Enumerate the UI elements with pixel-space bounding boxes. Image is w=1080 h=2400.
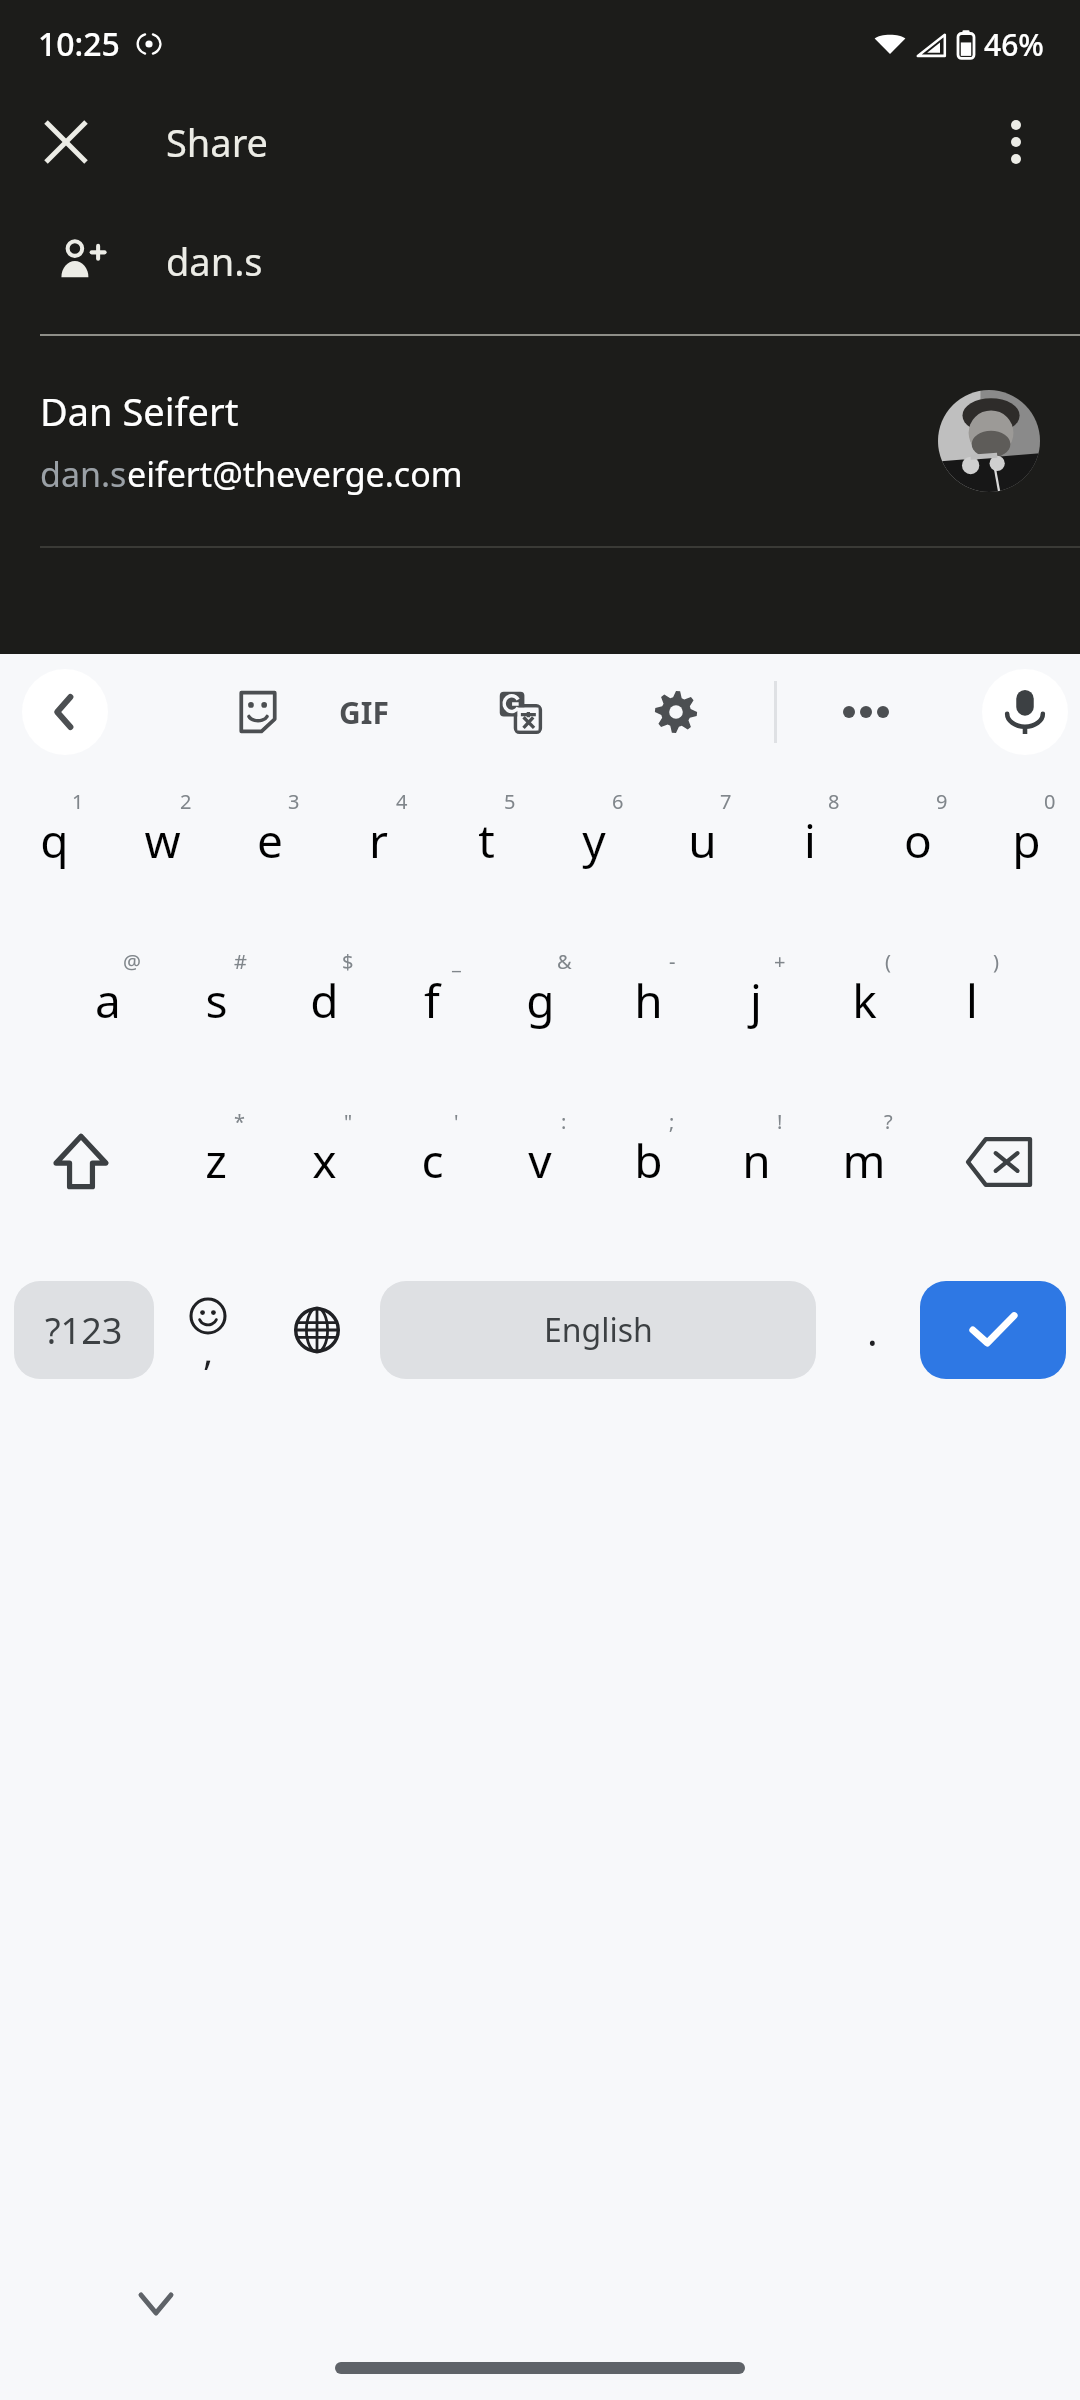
button[interactable]: Stickers (212, 666, 304, 758)
staticText: 8 (828, 788, 840, 815)
button[interactable]: g (486, 930, 594, 1090)
button[interactable]: q (0, 770, 108, 930)
staticText: 4 (396, 788, 408, 815)
button[interactable]: w (108, 770, 216, 930)
staticText: - (669, 948, 676, 975)
staticText: 5 (504, 788, 516, 815)
button[interactable]: Shift (0, 1090, 162, 1250)
button[interactable]: z (162, 1090, 270, 1250)
staticText: o (904, 809, 932, 872)
staticText: f (424, 969, 440, 1032)
button[interactable]: Hide keyboard (120, 2268, 192, 2340)
button[interactable]: y (540, 770, 648, 930)
staticText: dan.s (40, 451, 127, 497)
button[interactable]: r (324, 770, 432, 930)
staticText: z (205, 1129, 227, 1192)
staticText: : (561, 1108, 567, 1135)
staticText: ?123 (45, 1306, 123, 1355)
button[interactable]: Voice input (982, 669, 1068, 755)
button[interactable]: More (820, 666, 912, 758)
staticText: c (421, 1129, 444, 1192)
staticText: x (312, 1129, 337, 1192)
button[interactable]: Change language (262, 1281, 372, 1379)
staticText: ) (993, 948, 999, 975)
staticText: h (634, 969, 663, 1032)
button[interactable]: Emoji (154, 1281, 262, 1379)
staticText: Dan Seifert (40, 385, 239, 437)
staticText: b (634, 1129, 663, 1192)
staticText: 2 (180, 788, 192, 815)
staticText: s (205, 969, 228, 1032)
button[interactable]: Translate (474, 666, 566, 758)
button[interactable]: t (432, 770, 540, 930)
staticText: 0 (1044, 788, 1056, 815)
staticText: p (1012, 809, 1041, 872)
button[interactable]: x (270, 1090, 378, 1250)
staticText: n (742, 1129, 771, 1192)
staticText: 6 (612, 788, 624, 815)
button[interactable]: ?123 (14, 1281, 154, 1379)
button[interactable]: i (756, 770, 864, 930)
button[interactable]: More options (974, 100, 1058, 184)
staticText: English (544, 1308, 653, 1352)
button[interactable]: v (486, 1090, 594, 1250)
staticText: g (526, 969, 555, 1032)
button[interactable]: e (216, 770, 324, 930)
staticText: 7 (720, 788, 732, 815)
staticText: 9 (936, 788, 948, 815)
button[interactable]: Back (22, 669, 108, 755)
button[interactable]: k (810, 930, 918, 1090)
staticText: ! (777, 1108, 783, 1135)
staticText: eifert@theverge.com (127, 451, 463, 497)
staticText: k (852, 969, 877, 1032)
staticText: 10:25 (38, 22, 120, 66)
staticText: + (774, 948, 786, 975)
staticText: i (804, 809, 816, 872)
button[interactable]: p (972, 770, 1080, 930)
button[interactable]: b (594, 1090, 702, 1250)
staticText: dan.s (166, 235, 263, 287)
staticText: 1 (72, 788, 84, 815)
button[interactable]: n (702, 1090, 810, 1250)
button[interactable]: d (270, 930, 378, 1090)
staticText: _ (452, 948, 461, 975)
staticText: j (750, 969, 762, 1032)
button[interactable]: h (594, 930, 702, 1090)
staticText: , (203, 1324, 214, 1376)
staticText: v (528, 1129, 552, 1192)
button[interactable]: l (918, 930, 1026, 1090)
staticText: l (966, 969, 978, 1032)
staticText: . (867, 1303, 878, 1357)
staticText: y (582, 809, 606, 872)
button[interactable]: Settings (630, 666, 722, 758)
button[interactable]: dan.s (0, 196, 1080, 326)
button[interactable]: f (378, 930, 486, 1090)
staticText: 3 (288, 788, 300, 815)
button[interactable]: c (378, 1090, 486, 1250)
button[interactable]: Backspace (918, 1090, 1080, 1250)
staticText: w (144, 809, 181, 872)
staticText: * (234, 1108, 246, 1135)
button[interactable]: j (702, 930, 810, 1090)
button[interactable]: Dan Seifert (0, 336, 1080, 546)
button[interactable]: a (54, 930, 162, 1090)
button[interactable]: . (824, 1281, 920, 1379)
button[interactable]: u (648, 770, 756, 930)
button[interactable]: s (162, 930, 270, 1090)
button[interactable]: English (380, 1281, 816, 1379)
button[interactable]: Close (24, 100, 108, 184)
staticText: @ (123, 948, 141, 975)
staticText: a (95, 969, 121, 1032)
staticText: GIF (339, 692, 389, 733)
button[interactable]: o (864, 770, 972, 930)
staticText: ' (454, 1108, 459, 1135)
button[interactable]: GIF (318, 666, 410, 758)
staticText: ; (669, 1108, 675, 1135)
staticText: Share (166, 116, 269, 168)
staticText: # (234, 948, 247, 975)
staticText: t (478, 809, 495, 872)
staticText: 46% (984, 24, 1044, 65)
button[interactable]: Done (920, 1281, 1066, 1379)
button[interactable]: m (810, 1090, 918, 1250)
staticText: ? (884, 1108, 893, 1135)
